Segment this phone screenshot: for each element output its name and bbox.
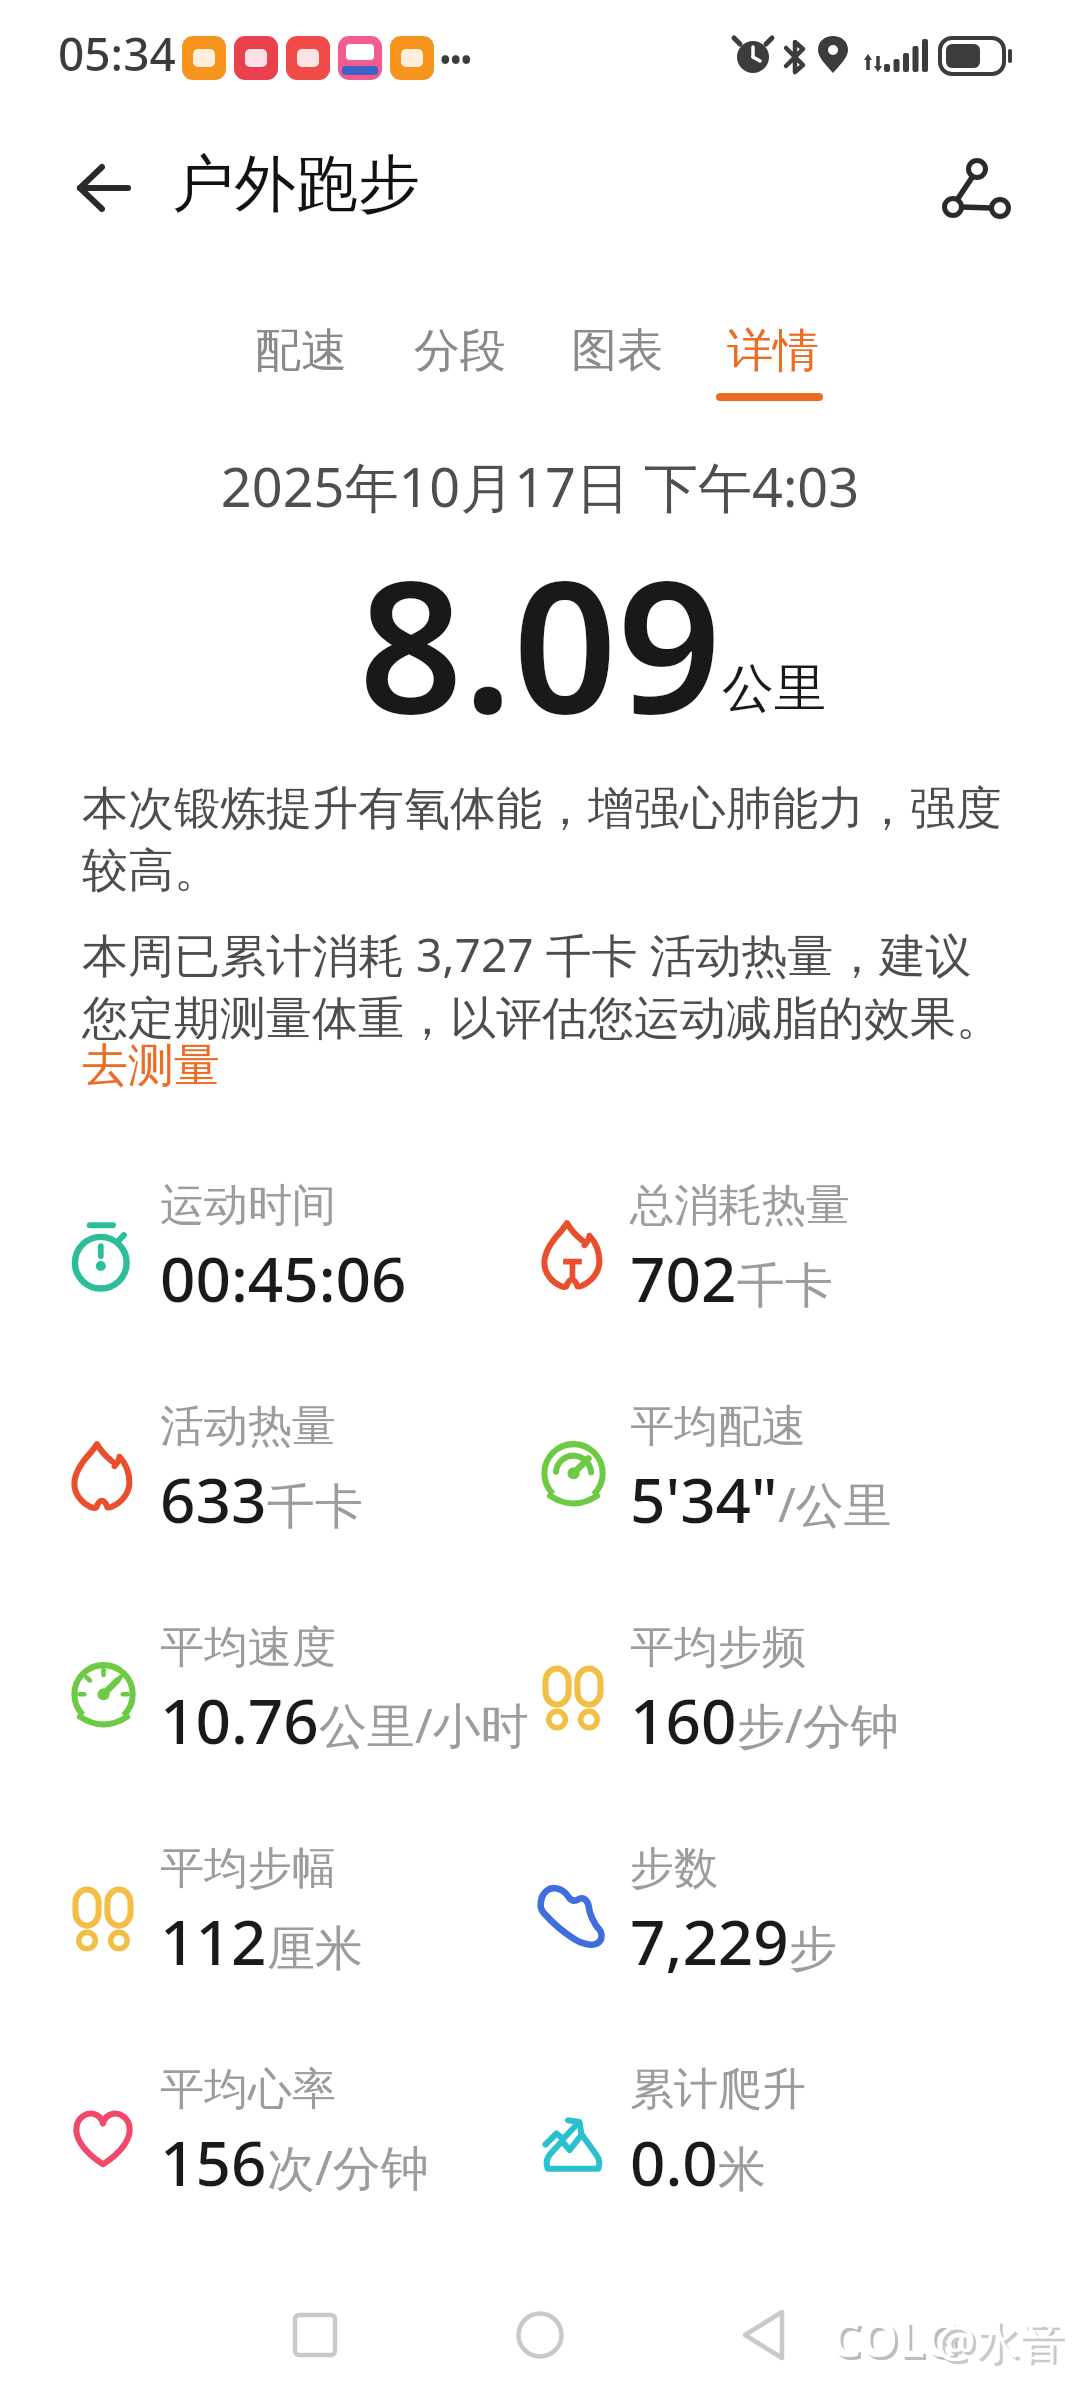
button[interactable] <box>255 2290 375 2380</box>
staticText: 千卡 <box>267 1477 363 1537</box>
button[interactable]: 配速 <box>235 300 365 400</box>
staticText: 公里 <box>722 656 826 722</box>
staticText: 活动热量 <box>160 1399 336 1454</box>
staticText: 10.76 <box>160 1678 319 1762</box>
staticText: 平均配速 <box>630 1399 806 1454</box>
button[interactable] <box>60 148 150 228</box>
staticText: 详情 <box>727 322 819 380</box>
staticText: 累计爬升 <box>630 2062 806 2117</box>
staticText: 0.0 <box>630 2120 718 2204</box>
staticText: 5'34" <box>630 1457 778 1541</box>
staticText: 公里/小时 <box>319 1692 529 1758</box>
staticText: @水音 <box>939 2313 1067 2373</box>
staticText: 步/分钟 <box>737 1692 899 1758</box>
staticText: 633 <box>160 1457 267 1541</box>
staticText: 厘米 <box>267 1919 363 1979</box>
staticText: 156 <box>160 2120 267 2204</box>
staticText: 00:45:06 <box>160 1236 407 1320</box>
staticText: /公里 <box>778 1471 892 1537</box>
staticText: 2025年10月17日 下午4:03 <box>0 449 1080 523</box>
button[interactable] <box>480 2290 600 2380</box>
staticText: COLG <box>830 2306 959 2371</box>
button[interactable]: 去测量 <box>82 1037 220 1095</box>
staticText: 户外跑步 <box>172 145 420 223</box>
staticText: 平均心率 <box>160 2062 336 2117</box>
button[interactable]: 详情 <box>707 300 837 410</box>
staticText: 分段 <box>414 322 506 380</box>
staticText: 步数 <box>630 1841 718 1896</box>
staticText: 702 <box>630 1236 737 1320</box>
staticText: 平均速度 <box>160 1620 336 1675</box>
staticText: COLG <box>833 2309 962 2374</box>
staticText: ••• <box>440 40 472 78</box>
staticText: 本周已累计消耗 3,727 千卡 活动热量，建议 您定期测量体重，以评估您运动减… <box>82 923 1002 1048</box>
staticText: 配速 <box>255 322 347 380</box>
staticText: 7,229 <box>630 1899 789 1983</box>
staticText: 运动时间 <box>160 1178 336 1233</box>
staticText: @水音 <box>936 2310 1064 2370</box>
staticText: 平均步幅 <box>160 1841 336 1896</box>
button[interactable] <box>705 2290 825 2380</box>
button[interactable]: 分段 <box>394 300 524 400</box>
staticText: 次/分钟 <box>267 2134 429 2200</box>
staticText: 8.09 <box>0 518 1080 766</box>
staticText: 112 <box>160 1899 267 1983</box>
staticText: 步 <box>789 1919 837 1979</box>
button[interactable] <box>920 140 1030 236</box>
staticText: 图表 <box>571 322 663 380</box>
staticText: 平均步频 <box>630 1620 806 1675</box>
staticText: 本次锻炼提升有氧体能，增强心肺能力，强度 较高。 <box>82 780 1002 900</box>
staticText: 160 <box>630 1678 737 1762</box>
button[interactable]: 图表 <box>551 300 681 400</box>
staticText: 总消耗热量 <box>630 1178 850 1233</box>
staticText: 05:34 <box>58 22 176 85</box>
staticText: 米 <box>718 2140 766 2200</box>
staticText: 千卡 <box>737 1256 833 1316</box>
